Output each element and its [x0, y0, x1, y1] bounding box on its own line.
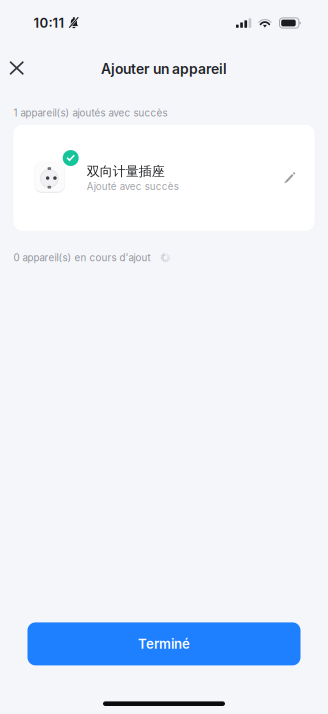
button[interactable]: Terminé [27, 622, 300, 665]
staticText: Ajouté avec succès [87, 181, 179, 192]
staticText: 0 appareil(s) en cours d'ajout [13, 252, 150, 264]
staticText: Terminé [138, 636, 190, 652]
staticText: 1 appareil(s) ajoutés avec succès [13, 107, 167, 119]
staticText: 双向计量插座 [87, 163, 165, 180]
staticText: 10:11 [33, 15, 64, 31]
button[interactable]: Fermer [0, 46, 33, 90]
button[interactable]: Modifier [277, 165, 303, 191]
staticText: Ajouter un appareil [101, 61, 227, 77]
